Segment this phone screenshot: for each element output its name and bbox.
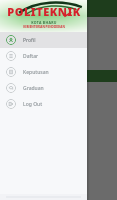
button[interactable]: DOC [0,64,87,80]
other: DOC [6,67,16,77]
other: CAP [6,83,16,93]
staticText: KOTA BHARU [31,20,57,25]
other: EXIT [6,99,16,109]
button[interactable]: CAP [0,80,87,96]
staticText: POLITEKNIK [7,4,81,19]
other: LIST [6,51,16,61]
staticText: Log Out [23,101,43,108]
button[interactable]: EXIT [0,96,87,112]
staticText: Keputusan [23,69,49,76]
button[interactable]: PERSON [0,32,87,48]
button[interactable]: LIST [0,48,87,64]
staticText: Daftar [23,53,39,60]
other: PERSON [6,35,16,45]
staticText: KEMENTERIAN PENDIDIKAN [23,25,65,29]
staticText: Graduan [23,85,44,92]
staticText: Profil [23,37,36,44]
